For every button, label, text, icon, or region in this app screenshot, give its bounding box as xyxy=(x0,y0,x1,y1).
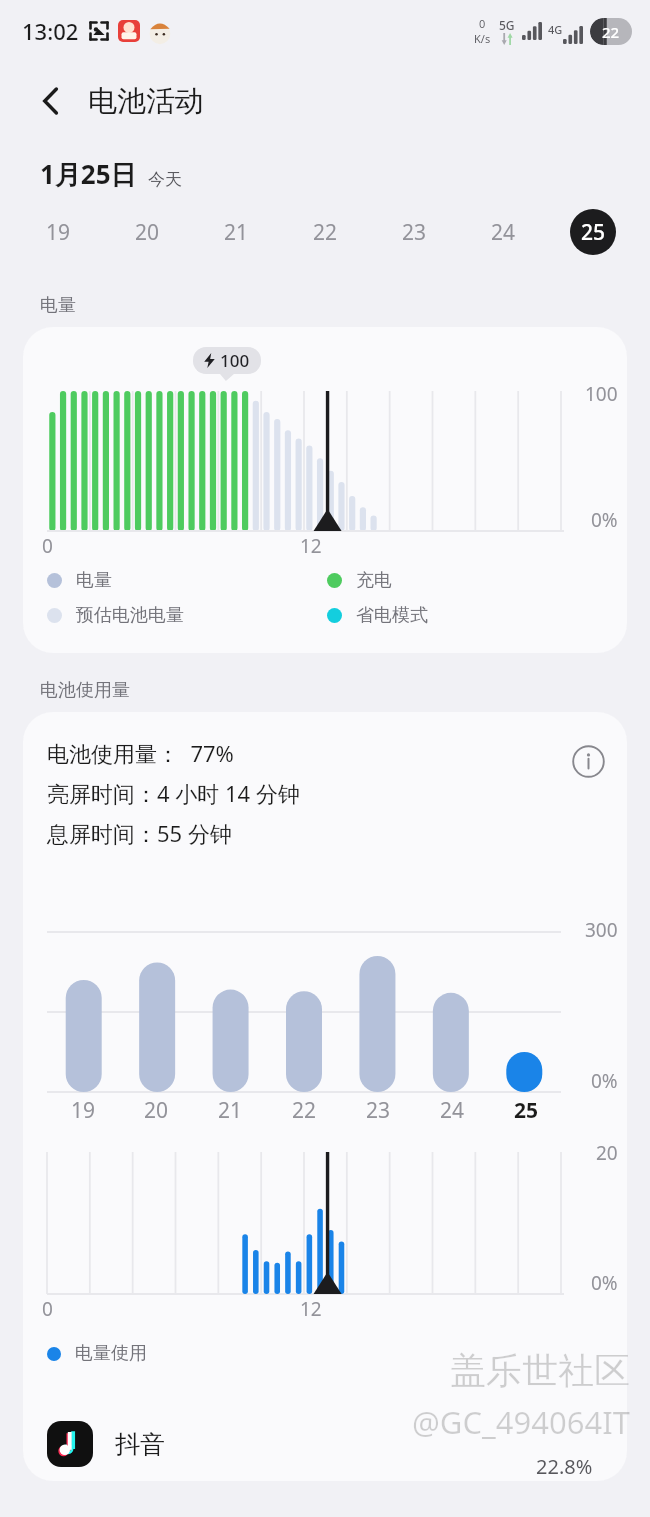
staticText: 21 xyxy=(224,218,249,247)
staticText: 12 xyxy=(300,533,322,557)
button[interactable]: 20 xyxy=(103,197,192,267)
staticText: 12 xyxy=(300,1296,322,1322)
staticText: 19 xyxy=(46,218,71,247)
staticText: 23 xyxy=(402,218,427,247)
button[interactable]: 22 xyxy=(281,197,370,267)
staticText: 抖音 xyxy=(115,1429,165,1460)
staticText: 0% xyxy=(591,1068,618,1094)
staticText: 今天 xyxy=(148,169,182,190)
staticText: 省电模式 xyxy=(356,604,428,627)
button[interactable]: 23 xyxy=(370,197,459,267)
button[interactable]: 25 xyxy=(548,197,637,267)
staticText: 22 xyxy=(313,218,338,247)
staticText: 13:02 xyxy=(22,16,79,46)
staticText: 电池使用量： 77% xyxy=(47,738,234,768)
staticText: 25 xyxy=(514,1096,539,1125)
staticText: 息屏时间：55 分钟 xyxy=(47,818,232,848)
staticText: 0% xyxy=(591,1270,618,1296)
staticText: 盖乐世社区 xyxy=(450,1348,630,1393)
staticText: 4G xyxy=(548,22,563,37)
staticText: 电池活动 xyxy=(88,83,204,120)
staticText: 亮屏时间：4 小时 14 分钟 xyxy=(47,778,300,808)
staticText: 电量 xyxy=(76,569,112,592)
staticText: 充电 xyxy=(356,569,392,592)
staticText: 20 xyxy=(144,1096,169,1125)
staticText: 22 xyxy=(602,22,620,42)
staticText: 24 xyxy=(491,218,516,247)
staticText: 0 xyxy=(42,1296,53,1322)
button[interactable]: 返回 xyxy=(28,78,74,124)
staticText: 100 xyxy=(220,349,250,372)
staticText: 20 xyxy=(135,218,160,247)
staticText: 电量使用 xyxy=(75,1342,147,1365)
staticText: 0 xyxy=(42,533,53,557)
staticText: 0 xyxy=(479,16,486,31)
button[interactable]: 19 xyxy=(13,197,103,267)
staticText: 100 xyxy=(585,381,618,407)
staticText: 22 xyxy=(292,1096,317,1125)
staticText: 24 xyxy=(440,1096,465,1125)
staticText: 22.8% xyxy=(536,1453,593,1480)
staticText: 23 xyxy=(366,1096,391,1125)
button[interactable]: 抖音 xyxy=(23,1407,627,1481)
staticText: @GC_494064IT xyxy=(412,1401,630,1443)
button[interactable]: 100 xyxy=(23,327,627,653)
staticText: 19 xyxy=(71,1096,96,1125)
staticText: K/s xyxy=(474,31,491,46)
staticText: 电量 xyxy=(40,294,76,317)
button[interactable]: 信息 xyxy=(565,738,611,784)
staticText: 20 xyxy=(596,1140,618,1166)
staticText: 300 xyxy=(585,917,618,943)
staticText: 0% xyxy=(591,507,618,533)
button[interactable]: 24 xyxy=(459,197,548,267)
staticText: 5G xyxy=(499,17,515,33)
button[interactable]: 21 xyxy=(192,197,281,267)
staticText: 21 xyxy=(218,1096,243,1125)
staticText: 1月25日 xyxy=(40,156,137,192)
staticText: 预估电池电量 xyxy=(76,604,184,627)
staticText: 电池使用量 xyxy=(40,679,130,702)
staticText: 25 xyxy=(581,218,606,247)
